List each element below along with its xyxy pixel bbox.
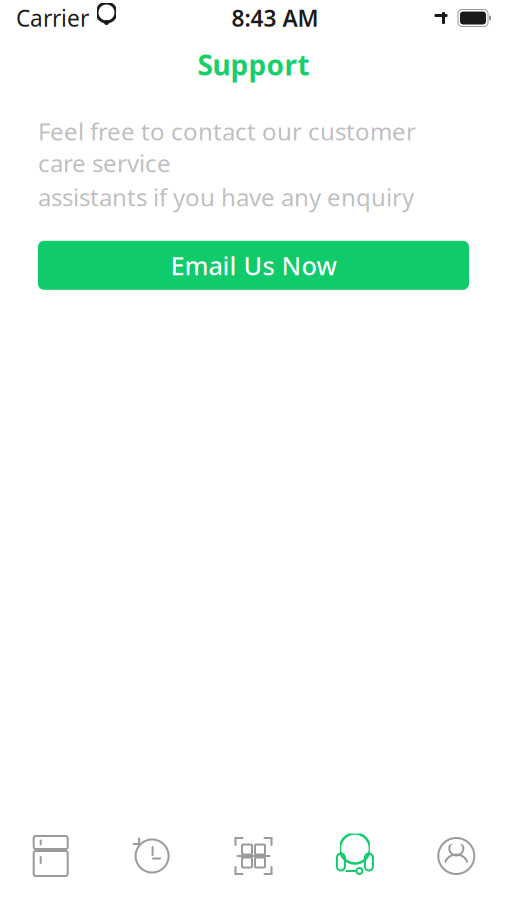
staticText: assistants if you have any enquiry <box>38 181 414 213</box>
button[interactable]: Email Us Now <box>38 241 469 290</box>
button[interactable]: Scan QR code <box>203 820 304 892</box>
button[interactable]: History <box>101 820 203 892</box>
button[interactable]: Support <box>304 820 406 892</box>
staticText: Support <box>197 46 309 83</box>
button[interactable]: Fridge <box>0 820 101 892</box>
staticText: Email Us Now <box>170 248 336 282</box>
button[interactable]: Profile <box>406 820 507 892</box>
staticText: Feel free to contact our customer care s… <box>38 115 416 179</box>
staticText: 8:43 AM <box>231 3 318 33</box>
staticText: Carrier <box>16 3 89 33</box>
